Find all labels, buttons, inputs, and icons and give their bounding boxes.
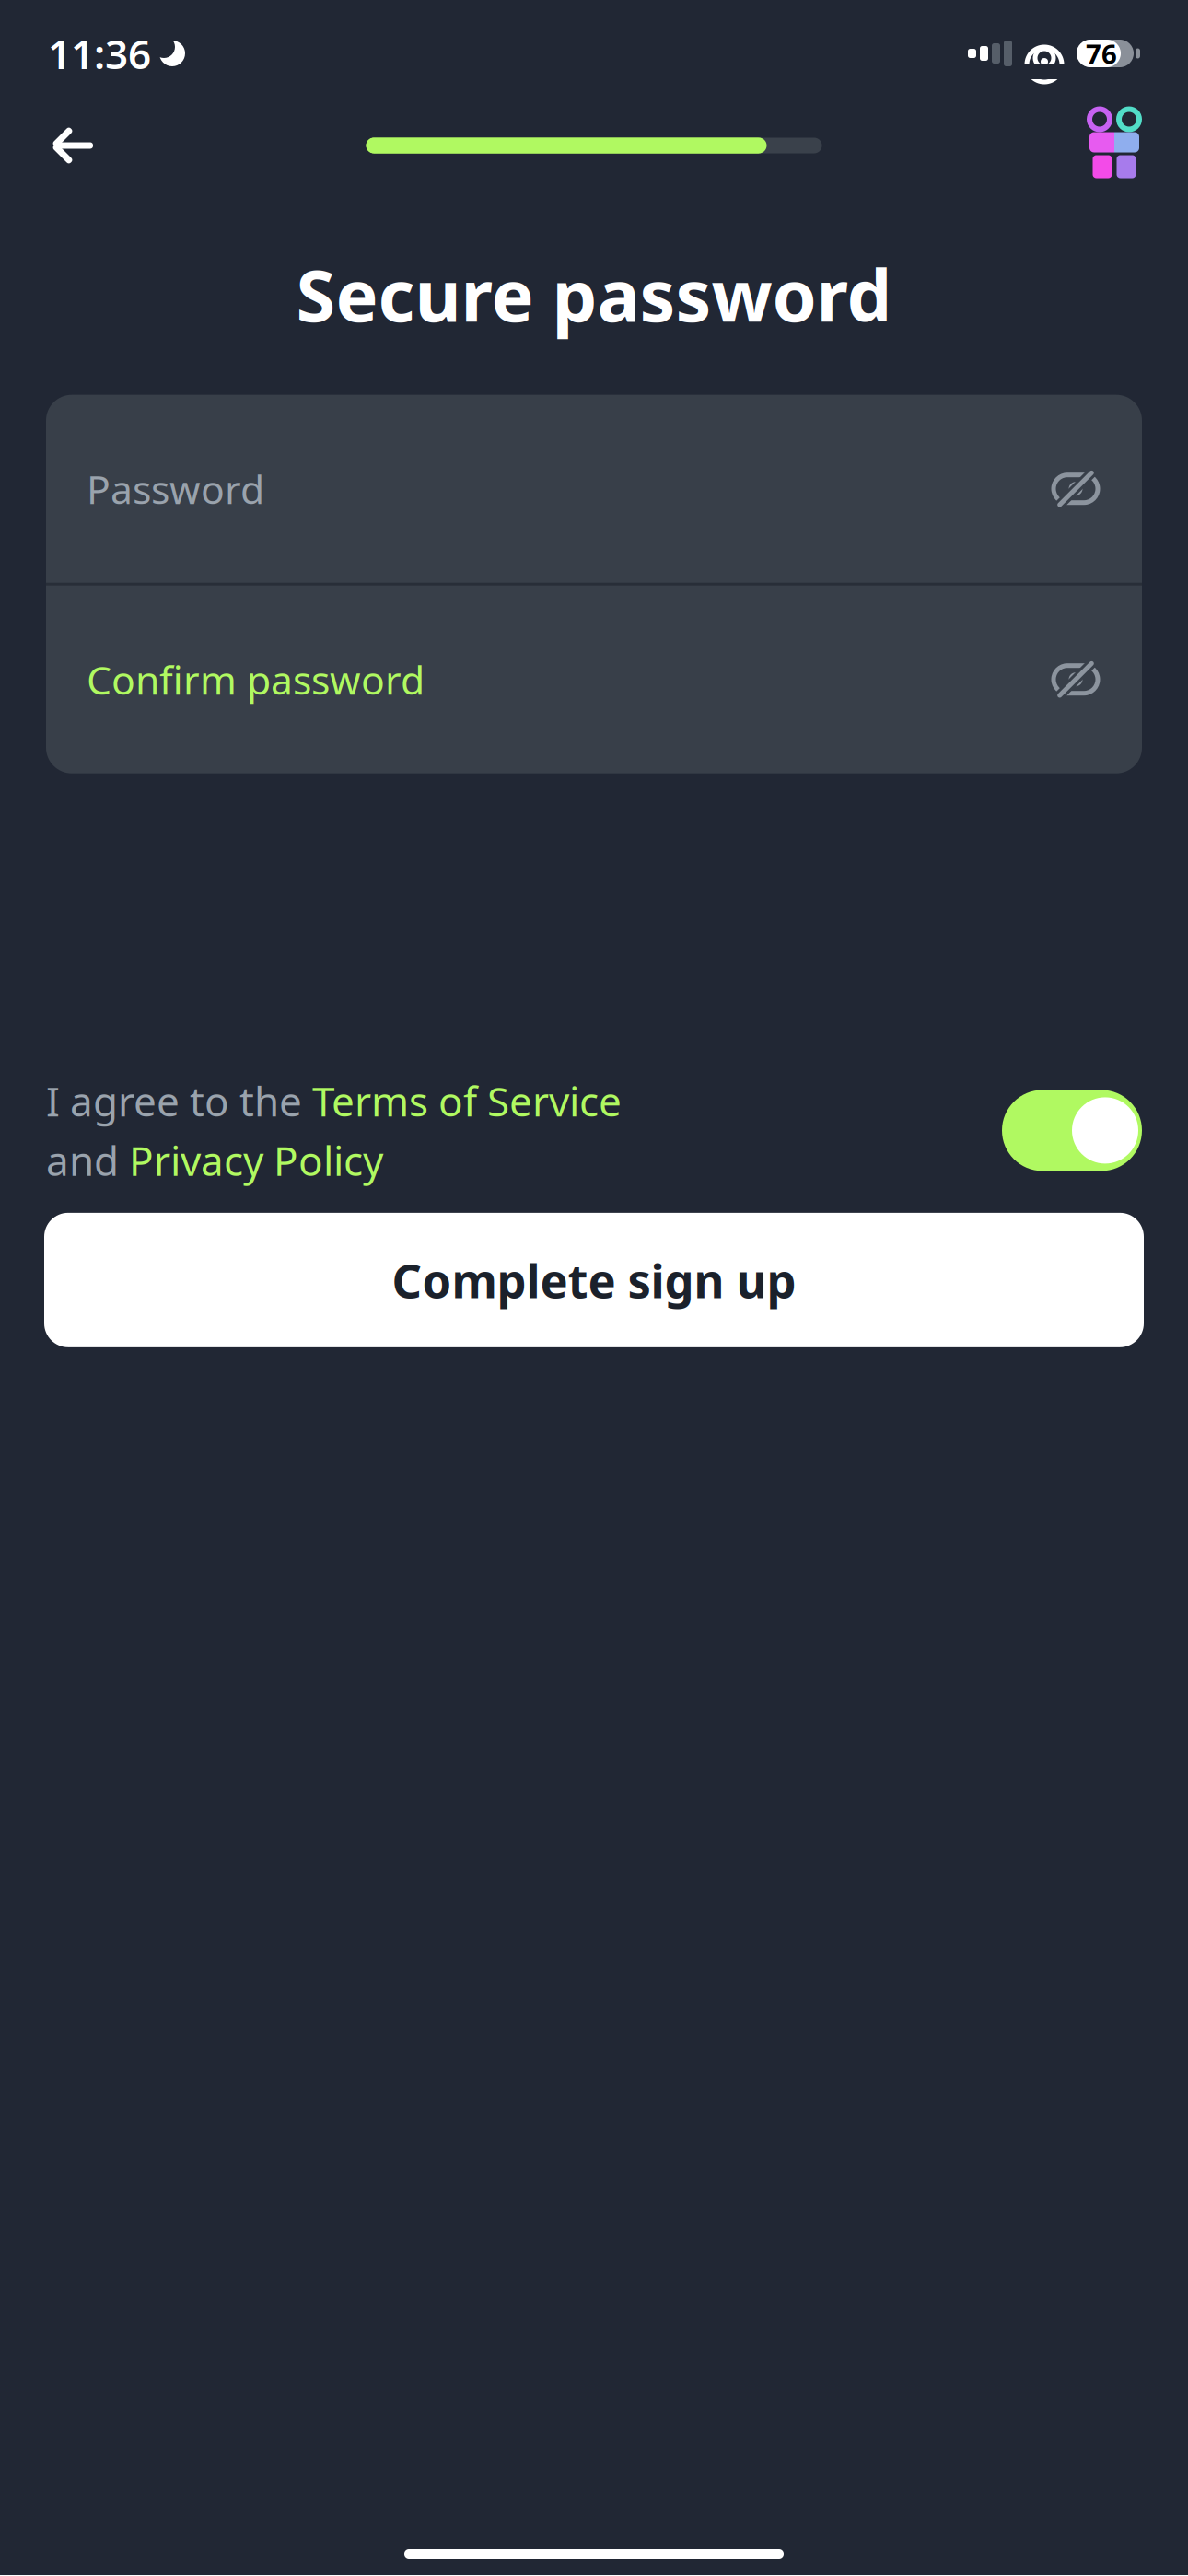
staticText: I agree to the [46, 1074, 312, 1128]
staticText: Secure password [296, 247, 892, 341]
staticText: Complete sign up [392, 1249, 796, 1311]
staticText: Confirm password [87, 653, 425, 706]
button[interactable]: Agree to terms [1002, 1090, 1142, 1171]
button[interactable]: Privacy Policy [129, 1133, 383, 1187]
staticText: 11:36 [48, 27, 151, 80]
button[interactable]: Rewards [1079, 111, 1149, 181]
button[interactable]: Confirm password [46, 585, 1142, 773]
button[interactable]: Password [46, 395, 1142, 583]
staticText: and [46, 1133, 129, 1187]
button[interactable]: Back [39, 111, 109, 181]
button[interactable]: Complete sign up [44, 1213, 1144, 1347]
staticText: Password [87, 463, 264, 515]
staticText: Terms of Service [312, 1074, 622, 1128]
button[interactable]: Terms of Service [312, 1074, 622, 1128]
staticText: Privacy Policy [129, 1133, 383, 1187]
staticText: 76 [1086, 35, 1117, 71]
